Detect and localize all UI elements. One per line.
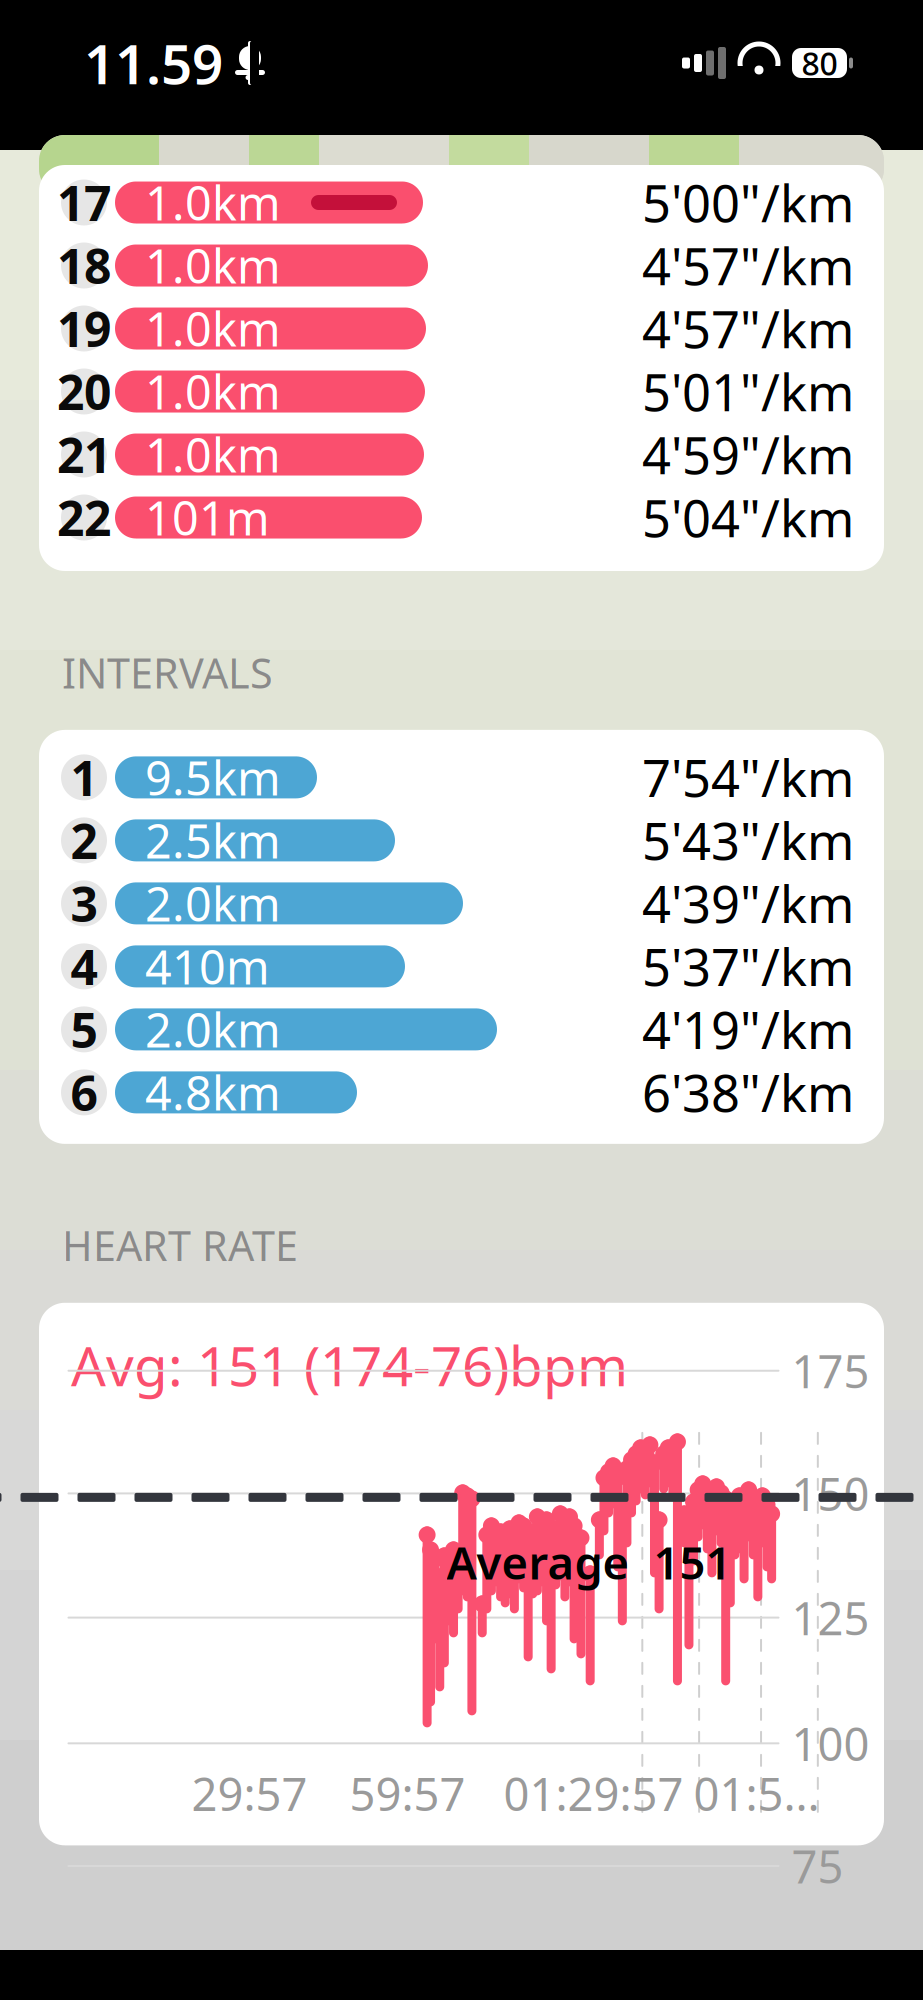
staticText: 1.0km <box>145 423 281 485</box>
staticText: 4'57"/km <box>642 232 854 299</box>
staticText: 11.59 <box>84 27 223 99</box>
button[interactable]: 21 <box>39 423 884 486</box>
staticText: 75 <box>791 1836 843 1896</box>
staticText: 01:5... <box>693 1763 819 1823</box>
staticText: 150 <box>791 1463 869 1523</box>
button[interactable]: 20 <box>39 360 884 423</box>
staticText: 3 <box>70 871 97 935</box>
staticText: 1.0km <box>145 234 281 296</box>
staticText: 29:57 <box>191 1763 307 1823</box>
staticText: 9.5km <box>145 746 281 808</box>
staticText: 4'59"/km <box>642 421 854 488</box>
staticText: 175 <box>791 1341 869 1401</box>
staticText: INTERVALS <box>62 645 273 700</box>
button[interactable]: 3 <box>39 872 884 935</box>
staticText: 4'19"/km <box>642 996 854 1063</box>
staticText: 1.0km <box>145 297 281 359</box>
staticText: 5'01"/km <box>642 358 854 425</box>
staticText: 01:29:57 <box>503 1763 683 1823</box>
staticText: 19 <box>57 297 111 360</box>
staticText: 1 <box>70 745 97 809</box>
staticText: 4 <box>70 934 97 998</box>
button[interactable]: 6 <box>39 1061 884 1124</box>
button[interactable]: 5 <box>39 998 884 1061</box>
button[interactable]: 19 <box>39 297 884 360</box>
button[interactable]: 18 <box>39 234 884 297</box>
staticText: Average 151 <box>446 1532 731 1592</box>
staticText: 2.0km <box>145 998 281 1060</box>
staticText: 2.5km <box>145 809 281 871</box>
staticText: HEART RATE <box>62 1218 298 1273</box>
button[interactable]: 2 <box>39 809 884 872</box>
staticText: 5'04"/km <box>642 484 854 551</box>
staticText: 125 <box>791 1587 869 1648</box>
staticText: 5'43"/km <box>642 807 854 874</box>
staticText: 2.0km <box>145 872 281 934</box>
button[interactable]: 17 <box>39 171 884 234</box>
staticText: 18 <box>57 234 111 297</box>
staticText: 5'00"/km <box>642 169 854 236</box>
staticText: 4.8km <box>145 1061 281 1123</box>
staticText: 2 <box>70 808 97 872</box>
staticText: 20 <box>57 360 111 423</box>
button[interactable]: 22 <box>39 486 884 549</box>
button[interactable]: 1 <box>39 746 884 809</box>
staticText: 17 <box>57 171 111 234</box>
staticText: 410m <box>145 935 270 997</box>
staticText: 5'37"/km <box>642 933 854 1000</box>
staticText: 80 <box>801 42 837 84</box>
staticText: 1.0km <box>145 360 281 422</box>
staticText: 21 <box>57 423 111 486</box>
staticText: 7'54"/km <box>642 744 854 811</box>
button[interactable]: 4 <box>39 935 884 998</box>
staticText: 5 <box>70 997 97 1061</box>
staticText: 22 <box>57 486 111 549</box>
staticText: 1.0km <box>145 171 281 233</box>
staticText: 101m <box>145 486 270 548</box>
staticText: 4'57"/km <box>642 295 854 362</box>
staticText: 6'38"/km <box>642 1059 854 1126</box>
staticText: Avg: 151 (174-76)bpm <box>71 1329 628 1401</box>
staticText: 6 <box>70 1060 97 1124</box>
staticText: 59:57 <box>349 1763 465 1823</box>
staticText: 100 <box>791 1713 869 1773</box>
staticText: 4'39"/km <box>642 870 854 937</box>
